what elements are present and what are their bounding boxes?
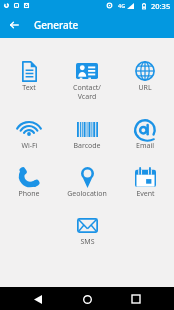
staticText: Text (22, 83, 36, 93)
staticText: SMS (80, 237, 95, 247)
button[interactable]: Geolocation (58, 165, 116, 199)
button[interactable]: Contact/ Vcard (58, 59, 116, 101)
staticText: Email (136, 141, 154, 151)
staticText: Phone (18, 189, 40, 199)
staticText: Geolocation (67, 189, 107, 199)
staticText: Wi-Fi (21, 141, 38, 151)
button[interactable]: Barcode (58, 117, 116, 151)
staticText: Generate (34, 18, 79, 32)
staticText: Contact/ Vcard (73, 83, 101, 101)
staticText: 20:35 (151, 1, 171, 11)
button[interactable]: Email (116, 117, 174, 151)
button[interactable]: Back (27, 288, 49, 310)
staticText: Barcode (73, 141, 101, 151)
button[interactable]: Phone (0, 165, 58, 199)
button[interactable]: Text (0, 59, 58, 93)
button[interactable]: Home (76, 288, 98, 310)
button[interactable]: Back (0, 11, 28, 38)
staticText: 4G (118, 2, 126, 9)
button[interactable]: Recents (125, 288, 147, 310)
button[interactable]: Event (116, 165, 174, 199)
button[interactable]: URL (116, 59, 174, 93)
staticText: Event (136, 189, 155, 199)
staticText: URL (138, 83, 152, 93)
button[interactable]: Wi-Fi (0, 117, 58, 151)
button[interactable]: SMS (58, 213, 116, 247)
